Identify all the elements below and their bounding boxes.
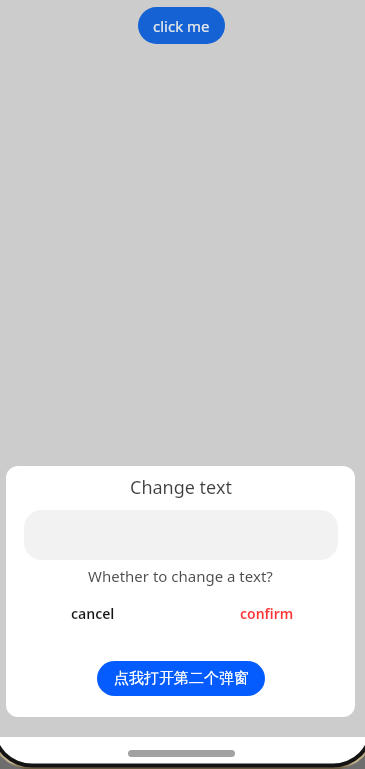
button[interactable]: cancel (71, 604, 115, 623)
staticText: cancel (71, 604, 115, 623)
staticText: Change text (130, 475, 232, 500)
staticText: 点我打开第二个弹窗 (114, 669, 249, 688)
button[interactable]: confirm (240, 604, 294, 623)
staticText: Whether to change a text? (88, 566, 273, 586)
button[interactable]: click me (138, 7, 225, 44)
staticText: confirm (240, 604, 294, 623)
staticText: click me (153, 16, 210, 36)
button[interactable]: 点我打开第二个弹窗 (97, 661, 265, 696)
button[interactable]: Home (128, 750, 235, 757)
